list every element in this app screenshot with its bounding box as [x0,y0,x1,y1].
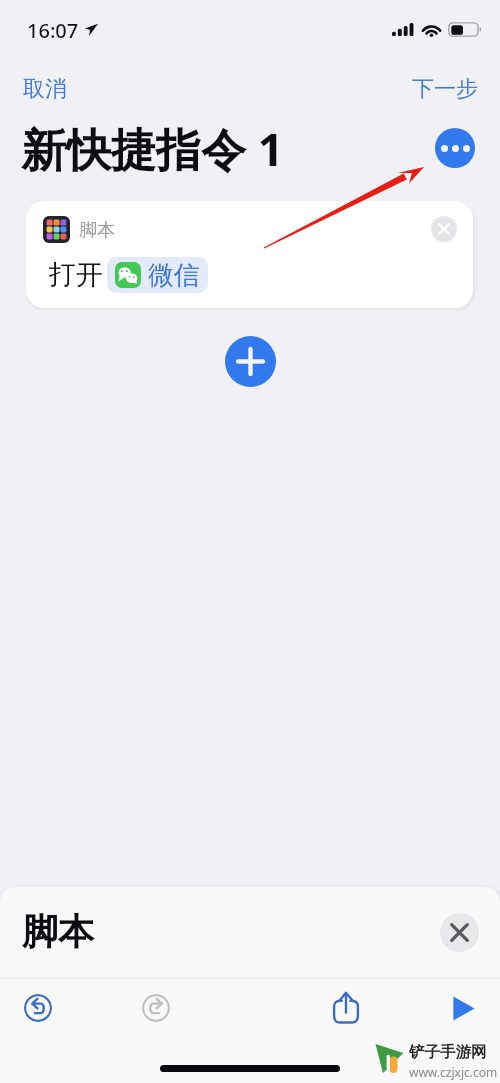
staticText: 新快捷指令 1 [21,118,284,179]
button[interactable]: Add action [225,336,276,387]
staticText: 脚本 [79,219,115,242]
button[interactable]: 下一步 [401,68,489,110]
staticText: 打开 [49,258,103,292]
staticText: 脚本 [22,909,94,954]
staticText: 微信 [148,259,200,292]
button[interactable]: Share [332,991,360,1024]
button[interactable]: 脚本 [26,201,473,308]
button[interactable]: More options [435,128,475,168]
button[interactable]: 微信 [107,257,208,293]
staticText: 16:07 [27,17,79,44]
button[interactable]: Undo [24,994,52,1022]
button[interactable]: Close [440,913,479,952]
button[interactable]: Run [452,996,475,1021]
staticText: 下一步 [412,75,478,103]
button[interactable]: Redo [142,994,170,1022]
staticText: 取消 [23,75,67,103]
button[interactable]: Remove action [431,216,457,242]
staticText: www.czjxjc.com [409,1064,498,1080]
button[interactable]: 取消 [12,68,78,110]
staticText: 铲子手游网 [409,1042,487,1062]
